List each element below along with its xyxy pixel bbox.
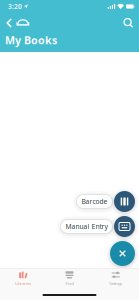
staticText: My Books <box>5 33 57 47</box>
button[interactable]: Settings <box>93 269 139 290</box>
button[interactable]: Back to libraries <box>6 16 30 30</box>
staticText: Libraries <box>15 281 31 286</box>
button[interactable]: Libraries <box>0 269 46 290</box>
staticText: Settings <box>109 281 122 286</box>
button[interactable]: Barcode <box>76 191 135 212</box>
button[interactable]: Search <box>123 16 134 29</box>
button[interactable]: Feed <box>46 269 93 290</box>
button[interactable]: Manual Entry <box>60 216 135 237</box>
staticText: Feed <box>65 281 73 286</box>
staticText: Manual Entry <box>65 222 107 231</box>
staticText: 3:20 <box>8 2 22 11</box>
staticText: Barcode <box>81 197 107 206</box>
button[interactable]: Close add menu <box>110 241 135 266</box>
